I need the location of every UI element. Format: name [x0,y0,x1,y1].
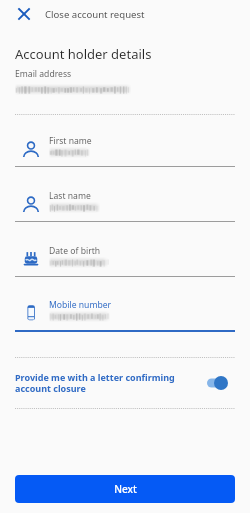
button[interactable]: Close [10,0,38,28]
staticText: Provide me with a letter confirming acco… [15,371,203,395]
staticText: Date of birth [49,245,101,257]
button[interactable]: Provide me with a letter confirming acco… [15,368,228,398]
staticText: Email address [15,68,72,80]
button[interactable]: Date of birth [0,238,250,278]
button[interactable]: Mobile number [0,292,250,332]
button[interactable]: Last name [0,183,250,223]
staticText: Last name [49,190,91,202]
staticText: Close account request [45,8,145,21]
staticText: Account holder details [15,45,152,63]
staticText: First name [49,135,92,147]
button[interactable]: Next [15,475,235,503]
staticText: Next [114,482,137,496]
button[interactable]: First name [0,128,250,168]
staticText: Mobile number [49,299,112,311]
